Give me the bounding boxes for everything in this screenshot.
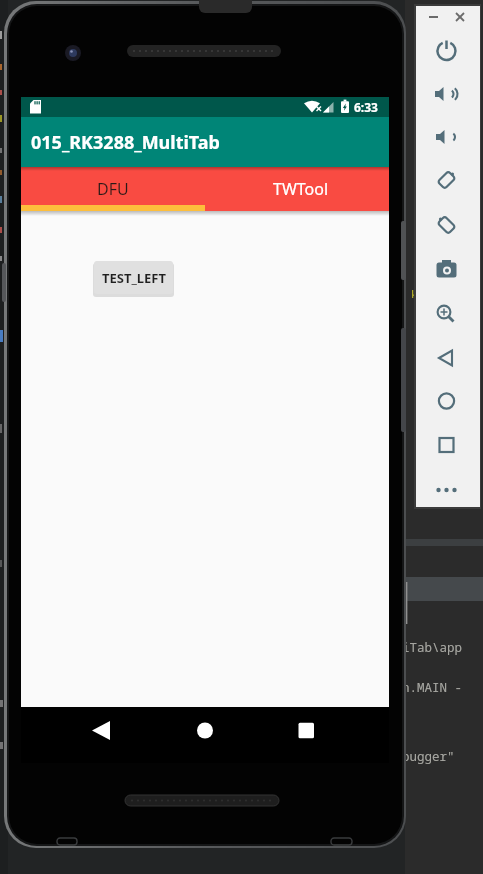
staticText: iTab\app [402, 639, 463, 656]
button[interactable]: TWTool [205, 167, 389, 211]
staticText: 6:33 [354, 99, 378, 115]
button[interactable] [430, 299, 463, 331]
staticText: n.MAIN - [402, 679, 463, 696]
button[interactable]: DFU [21, 167, 205, 211]
button[interactable] [430, 35, 463, 67]
button[interactable] [430, 254, 463, 286]
button[interactable] [430, 385, 463, 417]
staticText: TWTool [273, 178, 329, 200]
button[interactable] [430, 164, 463, 196]
button[interactable] [79, 711, 123, 759]
staticText: TEST_LEFT [102, 269, 166, 287]
button[interactable] [430, 474, 463, 506]
button[interactable] [183, 711, 227, 759]
button[interactable] [430, 429, 463, 461]
button[interactable]: TEST_LEFT [94, 261, 173, 294]
staticText: bugger" [402, 748, 455, 765]
button[interactable] [424, 9, 442, 25]
button[interactable] [430, 342, 463, 374]
button[interactable] [430, 121, 463, 153]
staticText: 015_RK3288_MultiTab [31, 130, 220, 155]
staticText: k [411, 286, 418, 301]
staticText: DFU [97, 178, 129, 200]
button[interactable] [451, 9, 469, 25]
button[interactable] [279, 711, 323, 759]
button[interactable] [430, 209, 463, 241]
button[interactable] [430, 78, 463, 110]
